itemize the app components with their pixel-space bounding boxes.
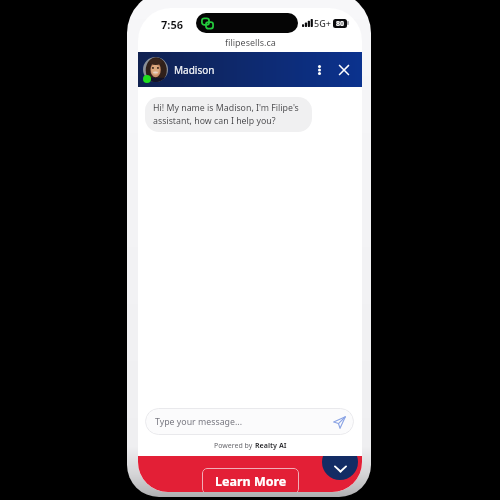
button[interactable]: Close: [334, 60, 354, 80]
button[interactable]: Type your message...: [145, 408, 354, 435]
staticText: 7:56: [161, 17, 183, 32]
button[interactable]: Send: [331, 414, 347, 430]
staticText: 80: [336, 19, 345, 28]
button[interactable]: More options: [309, 60, 329, 80]
button[interactable]: Collapse chat: [322, 456, 358, 480]
staticText: Type your message...: [155, 416, 243, 428]
staticText: filipesells.ca: [225, 36, 276, 48]
button[interactable]: Learn More: [202, 468, 299, 492]
staticText: Powered by: [214, 441, 255, 451]
staticText: Realty AI: [255, 441, 287, 451]
staticText: Madison: [174, 63, 215, 77]
button[interactable]: filipesells.ca: [138, 34, 362, 52]
staticText: 5G+: [314, 17, 331, 29]
staticText: Hi! My name is Madison, I'm Filipe's ass…: [153, 102, 299, 127]
staticText: Learn More: [215, 473, 287, 490]
